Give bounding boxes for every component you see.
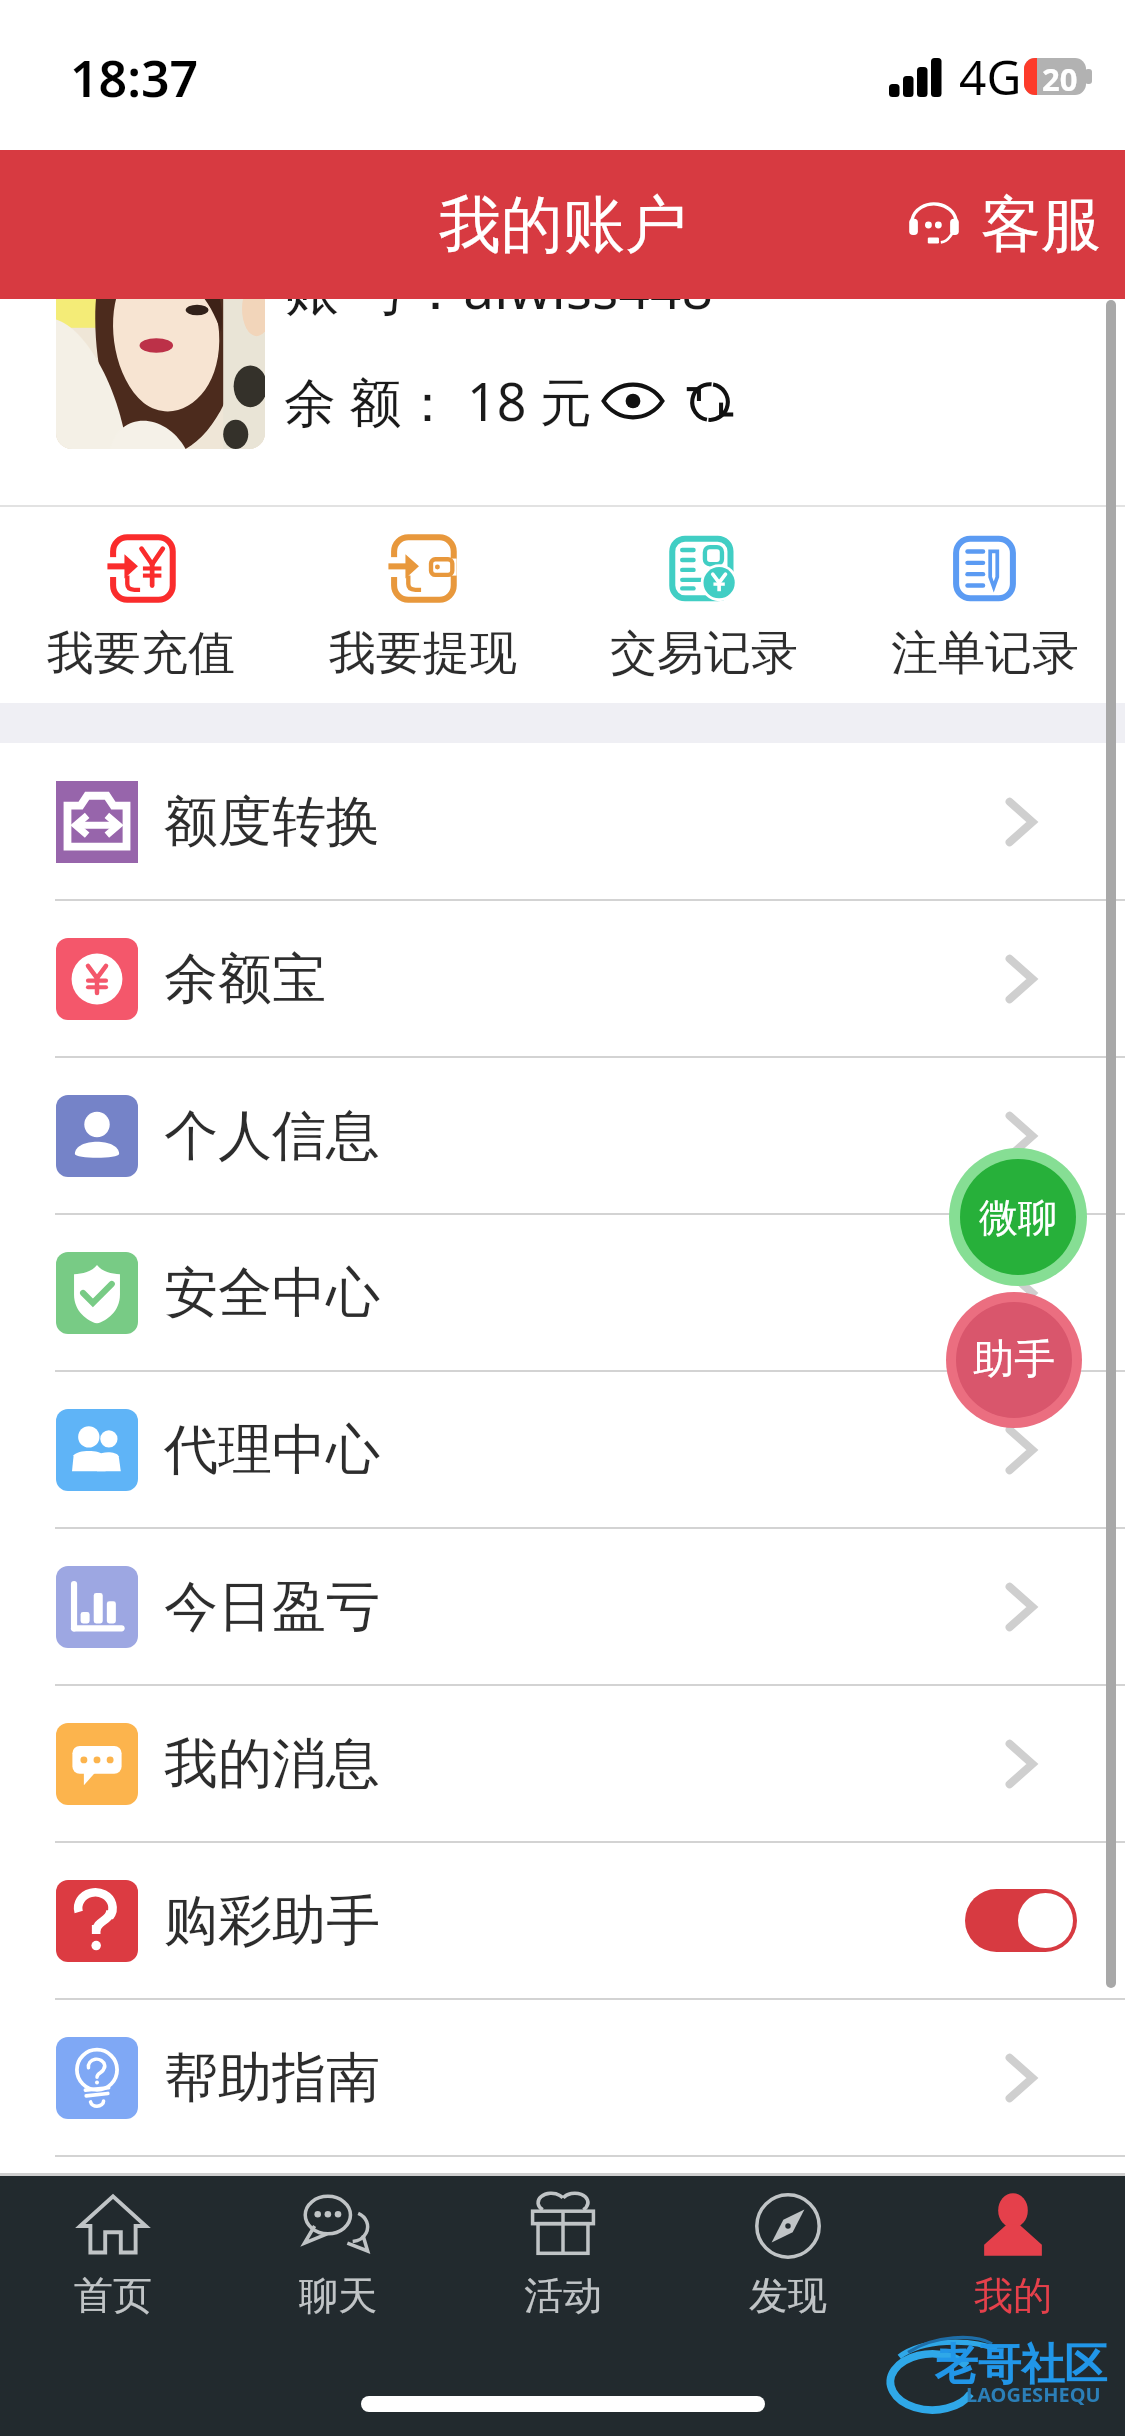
staticText: 客服 [981, 187, 1101, 263]
staticText: 我要充值 [47, 624, 235, 683]
staticText: 我的 [974, 2271, 1052, 2320]
staticText: 代理中心 [164, 1416, 380, 1484]
button[interactable]: 购彩助手 [0, 1843, 1125, 1998]
staticText: 安全中心 [164, 1259, 380, 1327]
staticText: 4G [959, 44, 1022, 109]
button[interactable]: 微聊 [949, 1148, 1087, 1286]
button[interactable]: Toggle 购彩助手 [965, 1889, 1077, 1952]
button[interactable]: 活动 [450, 2187, 675, 2355]
button[interactable]: 安全中心 [0, 1215, 1125, 1370]
button[interactable]: Avatar [56, 240, 265, 449]
button[interactable]: 发现 [675, 2187, 900, 2355]
staticText: 我的消息 [164, 1730, 380, 1798]
button[interactable]: 帮助指南 [0, 2000, 1125, 2155]
staticText: 注单记录 [891, 624, 1079, 683]
staticText: 我的账户 [439, 186, 687, 264]
button[interactable]: 交易记录 [563, 507, 844, 703]
button[interactable]: 首页 [0, 2187, 225, 2355]
button[interactable]: 个人信息 [0, 1058, 1125, 1213]
staticText: 购彩助手 [164, 1887, 380, 1955]
staticText: 助手 [973, 1334, 1055, 1386]
staticText: 余 额： 18 元 [284, 365, 593, 436]
staticText: 老哥社区 [935, 2338, 1107, 2392]
button[interactable]: Show balance [601, 369, 665, 433]
staticText: 交易记录 [610, 624, 798, 683]
button[interactable]: 助手 [946, 1292, 1082, 1428]
button[interactable]: 代理中心 [0, 1372, 1125, 1527]
staticText: 今日盈亏 [164, 1573, 380, 1641]
staticText: 活动 [524, 2271, 602, 2320]
staticText: 账 号：aiwiss448 [284, 250, 713, 325]
staticText: 余额宝 [164, 945, 326, 1013]
button[interactable]: 我的消息 [0, 1686, 1125, 1841]
staticText: 18:37 [70, 44, 199, 112]
staticText: 帮助指南 [164, 2044, 380, 2112]
button[interactable]: 聊天 [225, 2187, 450, 2355]
staticText: LAOGESHEQU [966, 2381, 1101, 2408]
staticText: 发现 [749, 2271, 827, 2320]
staticText: 微聊 [979, 1193, 1057, 1242]
button[interactable]: 额度转换 [0, 744, 1125, 899]
button[interactable]: 余额宝 [0, 901, 1125, 1056]
staticText: 我要提现 [329, 624, 517, 683]
button[interactable]: 今日盈亏 [0, 1529, 1125, 1684]
button[interactable]: 我要提现 [282, 507, 563, 703]
button[interactable]: 我的 [900, 2187, 1125, 2355]
staticText: 聊天 [299, 2271, 377, 2320]
staticText: 20 [1042, 58, 1078, 95]
button[interactable]: Refresh balance [683, 374, 737, 428]
button[interactable]: 注单记录 [844, 507, 1125, 703]
button[interactable]: 我要充值 [0, 507, 282, 703]
staticText: 首页 [74, 2271, 152, 2320]
staticText: 额度转换 [164, 788, 380, 856]
button[interactable]: 客服 [895, 173, 1109, 277]
staticText: 个人信息 [164, 1102, 380, 1170]
